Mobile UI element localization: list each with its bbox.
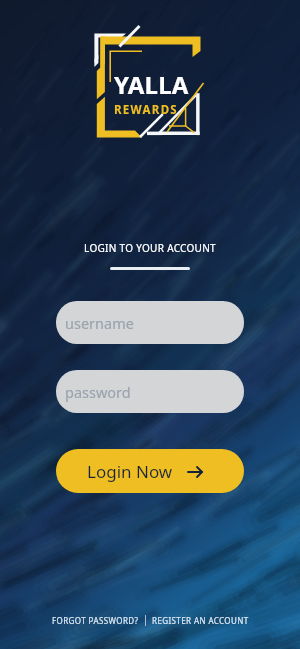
- button[interactable]: password: [56, 370, 244, 413]
- button[interactable]: FORGOT PASSWORD?: [46, 611, 145, 630]
- button[interactable]: REGISTER AN ACCOUNT: [146, 611, 255, 630]
- staticText: YALLA: [114, 68, 189, 101]
- staticText: LOGIN TO YOUR ACCOUNT: [84, 241, 216, 255]
- staticText: REWARDS: [114, 102, 179, 118]
- staticText: Login Now: [87, 460, 173, 483]
- staticText: password: [65, 382, 131, 402]
- staticText: username: [65, 313, 134, 333]
- button[interactable]: Login Now: [56, 449, 244, 493]
- button[interactable]: username: [56, 301, 244, 344]
